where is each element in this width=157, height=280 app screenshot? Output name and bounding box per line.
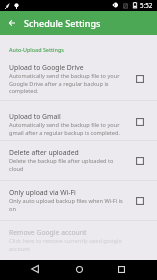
staticText: Upload to Gmail [9,112,61,121]
button[interactable]: Back [4,15,20,31]
button[interactable]: Only upload via Wi-Fi [132,193,148,209]
staticText: Upload to Google Drive [9,63,84,72]
staticText: Schedule Settings [24,17,101,29]
staticText: Automatically send the backup file to yo… [9,72,128,94]
staticText: Delete the backup file after uploaded to… [9,157,128,172]
button[interactable]: Delete after uploaded [132,153,148,169]
button[interactable]: Delete after uploaded [0,141,157,180]
button[interactable]: Upload to Gmail [132,114,148,130]
button[interactable]: Upload to Gmail [0,101,157,140]
staticText: Automatically send the backup file to yo… [9,121,128,136]
staticText: Remove Google account [9,228,87,237]
button[interactable]: Home [70,260,88,278]
staticText: 5:52 [140,1,153,9]
staticText: Click here to remove currently used goog… [9,237,128,252]
staticText: Only upload via Wi-Fi [9,188,76,197]
button[interactable]: Upload to Google Drive [0,56,157,100]
button[interactable]: Back [26,260,44,278]
button[interactable]: Recent apps [112,260,130,278]
staticText: Only auto upload backup files when Wi-Fi… [9,197,128,212]
staticText: Auto-Upload Settings [9,46,64,53]
button[interactable]: Upload to Google Drive [132,71,148,87]
button[interactable]: Remove Google account [0,221,157,260]
button[interactable]: Only upload via Wi-Fi [0,181,157,220]
staticText: Delete after uploaded [9,148,79,157]
